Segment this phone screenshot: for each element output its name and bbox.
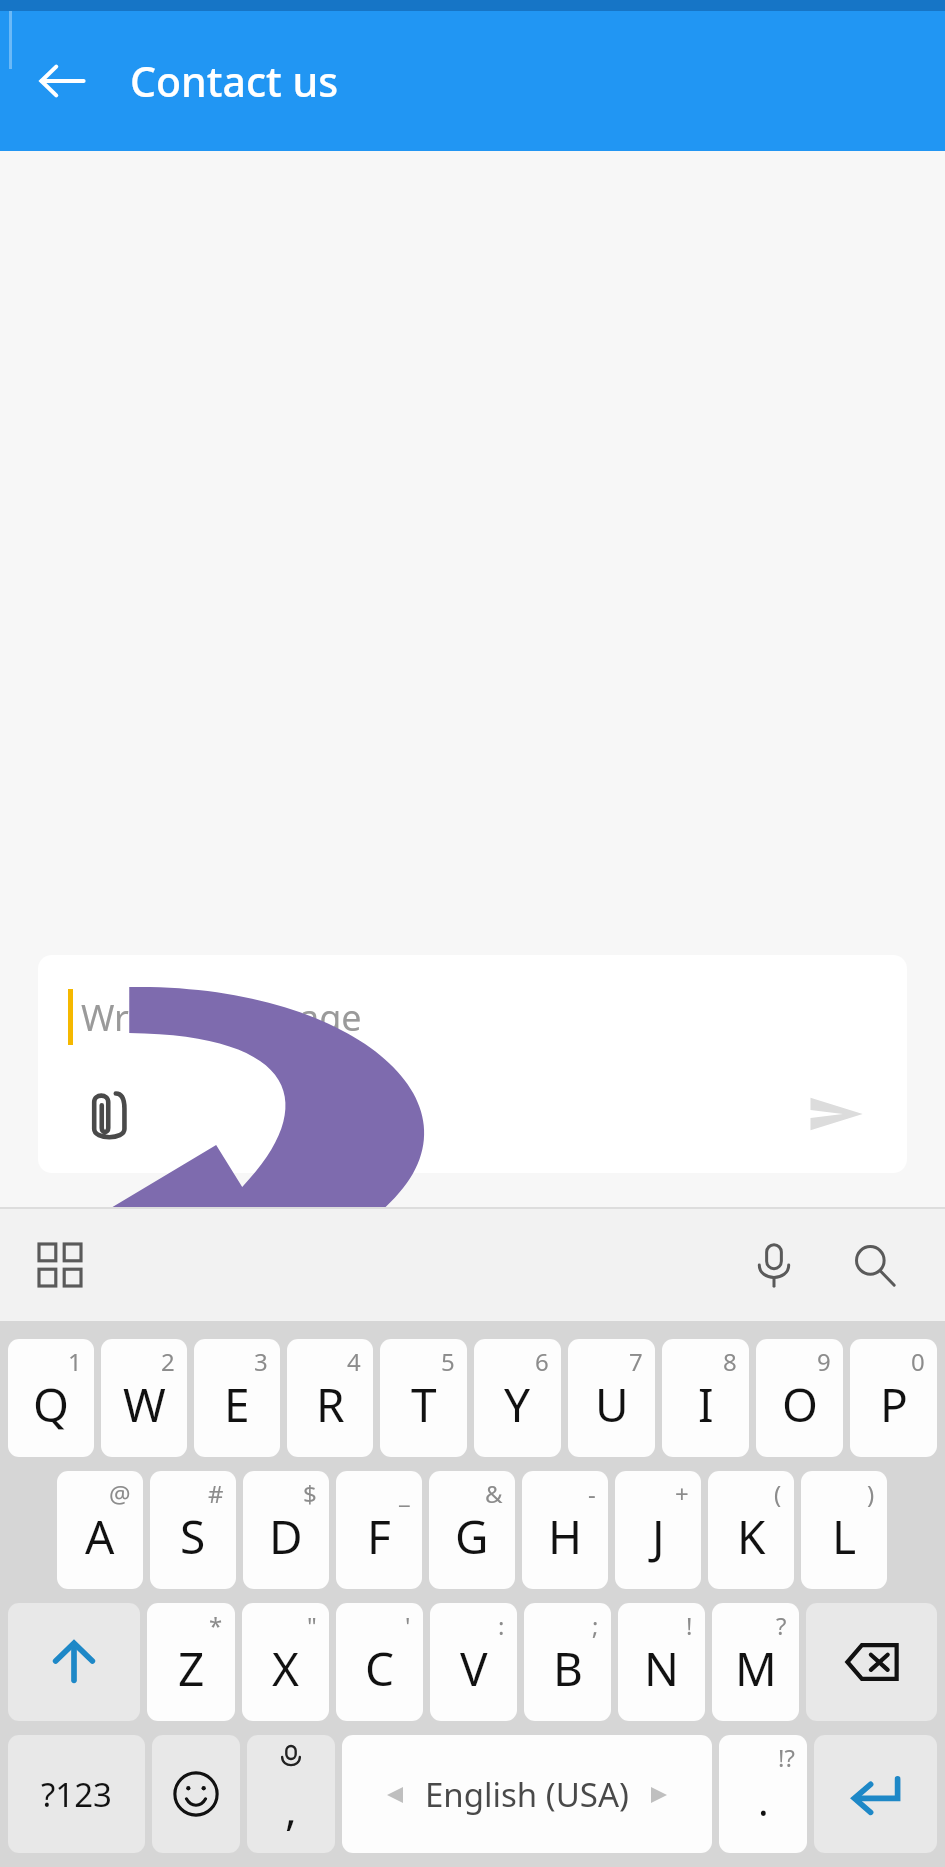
staticText: O [782,1373,818,1436]
staticText: L [832,1505,857,1568]
button[interactable]: & [429,1471,515,1589]
staticText: 3 [254,1345,268,1378]
staticText: ) [867,1477,875,1510]
staticText: Write a message [81,993,362,1042]
staticText: P [880,1373,908,1436]
staticText: W [123,1373,166,1436]
staticText: English (USA) [425,1772,629,1817]
button[interactable]: 6 [474,1339,561,1457]
staticText: @ [109,1477,131,1510]
button[interactable]: + [615,1471,701,1589]
staticText: _ [399,1477,410,1510]
button[interactable]: : [430,1603,517,1721]
staticText: D [269,1505,303,1568]
button[interactable]: @ [57,1471,143,1589]
staticText: J [652,1505,665,1568]
button[interactable]: ) [801,1471,887,1589]
button[interactable]: 3 [194,1339,280,1457]
staticText: Z [178,1637,205,1700]
button[interactable]: _ [336,1471,422,1589]
staticText: X [272,1637,299,1700]
staticText: A [85,1505,115,1568]
button[interactable]: ?123 [8,1735,145,1853]
button[interactable]: ( [708,1471,794,1589]
staticText: # [208,1477,224,1510]
staticText: ; [592,1609,599,1642]
button[interactable]: Attach file [70,1079,140,1149]
button[interactable]: Backspace [806,1603,937,1721]
button[interactable]: Keyboard modes [24,1229,96,1301]
staticText: 7 [629,1345,643,1378]
button[interactable]: !? [719,1735,807,1853]
button[interactable]: ! [618,1603,705,1721]
staticText: 4 [347,1345,361,1378]
button[interactable]: " [242,1603,329,1721]
button[interactable]: Back [26,45,98,117]
button[interactable]: ? [712,1603,799,1721]
staticText: $ [303,1477,317,1510]
button[interactable]: 2 [101,1339,187,1457]
button[interactable]: 0 [850,1339,937,1457]
staticText: K [737,1505,766,1568]
staticText: 5 [441,1345,455,1378]
staticText: " [307,1609,317,1642]
staticText: !? [778,1741,795,1774]
staticText: I [698,1373,714,1436]
staticText: S [180,1505,206,1568]
button[interactable]: # [150,1471,236,1589]
button[interactable]: English (USA) [342,1735,712,1853]
button[interactable]: 1 [8,1339,94,1457]
staticText: & [485,1477,503,1510]
staticText: , [285,1778,297,1838]
button[interactable]: Emoji [152,1735,240,1853]
staticText: M [735,1637,777,1700]
button[interactable]: 9 [756,1339,843,1457]
staticText: * [209,1609,223,1642]
button[interactable]: ' [336,1603,423,1721]
staticText: N [644,1637,679,1700]
button[interactable]: Voice input [733,1224,815,1306]
button[interactable]: 7 [568,1339,655,1457]
staticText: T [411,1373,437,1436]
button[interactable]: , [247,1735,335,1853]
staticText: R [316,1373,345,1436]
staticText: Y [504,1373,531,1436]
staticText: 0 [911,1345,925,1378]
button[interactable]: Send [801,1079,871,1149]
staticText: + [675,1477,689,1510]
staticText: C [365,1637,395,1700]
staticText: B [553,1637,583,1700]
staticText: V [460,1637,488,1700]
staticText: - [588,1477,596,1510]
staticText: ( [774,1477,782,1510]
staticText: 9 [817,1345,831,1378]
staticText: 6 [535,1345,549,1378]
staticText: ! [686,1609,693,1642]
button[interactable]: 5 [380,1339,467,1457]
staticText: ' [405,1609,411,1642]
staticText: 2 [161,1345,175,1378]
button[interactable]: Enter [814,1735,937,1853]
staticText: F [367,1505,391,1568]
button[interactable]: Shift [8,1603,140,1721]
staticText: E [224,1373,250,1436]
staticText: Contact us [130,53,339,109]
staticText: U [595,1373,629,1436]
button[interactable]: 8 [662,1339,749,1457]
staticText: H [548,1505,583,1568]
staticText: Q [33,1373,69,1436]
button[interactable]: $ [243,1471,329,1589]
staticText: 8 [723,1345,737,1378]
button[interactable]: Search [833,1224,915,1306]
button[interactable]: Write a message [38,955,907,1173]
staticText: : [498,1609,505,1642]
staticText: ? [776,1609,787,1642]
button[interactable]: * [147,1603,235,1721]
staticText: 1 [68,1345,82,1378]
staticText: ?123 [41,1772,112,1817]
staticText: G [455,1505,489,1568]
button[interactable]: - [522,1471,608,1589]
button[interactable]: 4 [287,1339,373,1457]
staticText: . [758,1773,769,1827]
button[interactable]: ; [524,1603,611,1721]
